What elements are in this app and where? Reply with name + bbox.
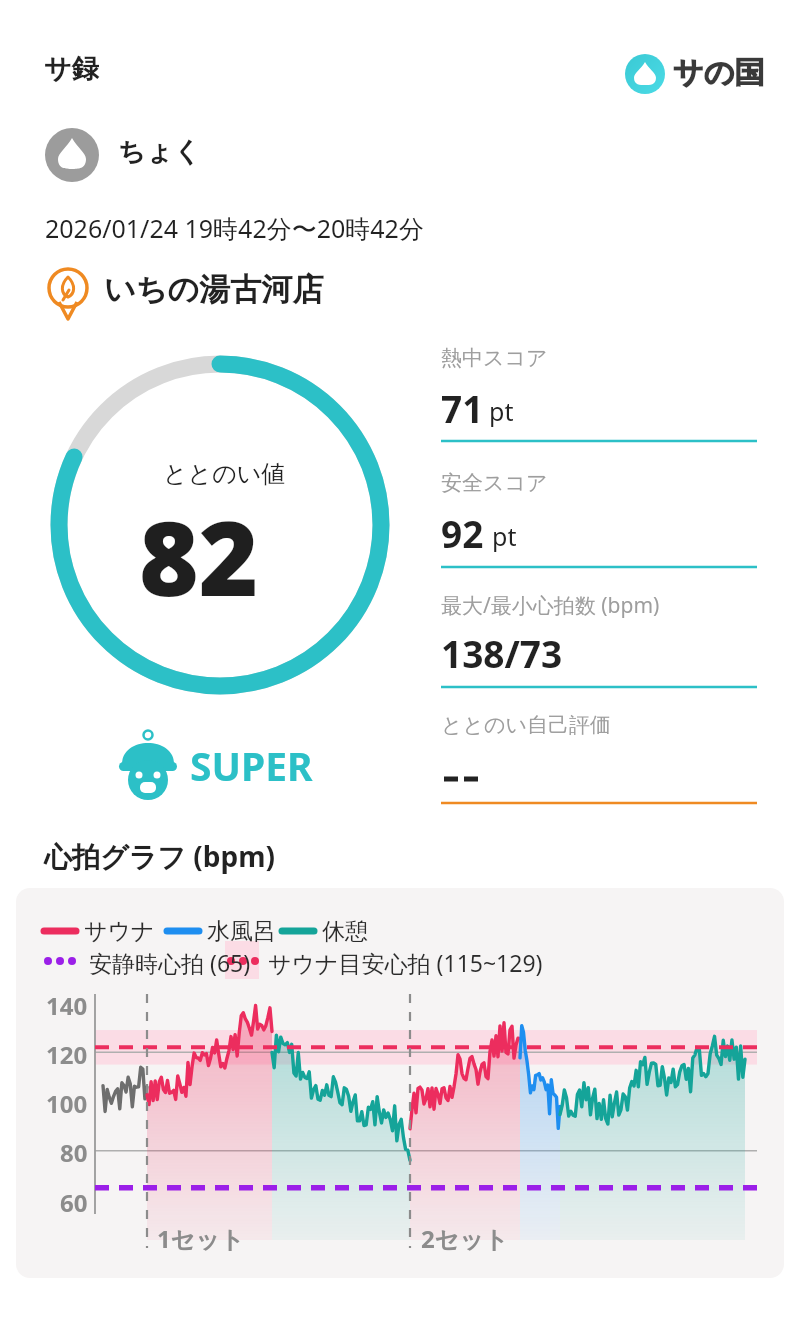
button[interactable]: ととのい値 82 [40,350,402,812]
staticText: サの国 [673,54,765,92]
staticText: サウナ [84,917,155,946]
staticText: 92 [441,508,484,558]
button[interactable] [436,583,762,695]
staticText: ととのい値 [163,459,286,489]
staticText: サウナ目安心拍 (115~129) [268,947,543,978]
staticText: 82 [139,487,259,626]
staticText: 100 [46,1087,88,1120]
staticText: 2026/01/24 19時42分〜20時42分 [45,211,424,245]
staticText: ととのい自己評価 [441,712,611,738]
button[interactable]: サの国 ロゴ [620,48,782,98]
staticText: 120 [46,1038,88,1071]
staticText: 1セット [157,1222,245,1255]
staticText: 60 [60,1186,88,1219]
button[interactable] [40,122,310,188]
staticText: サ録 [44,52,99,86]
button[interactable]: 心拍グラフ [16,888,784,1278]
button[interactable] [436,463,762,575]
staticText: 心拍グラフ (bpm) [44,837,275,875]
staticText: 140 [46,989,88,1022]
staticText: 水風呂 [207,917,276,946]
staticText: 80 [60,1136,88,1169]
staticText: 最大/最小心拍数 (bpm) [441,591,660,620]
staticText: 休憩 [322,917,368,946]
button[interactable] [40,260,380,320]
staticText: 138/73 [441,628,563,678]
staticText: ちょく [118,135,201,169]
staticText: 熱中スコア [441,345,548,371]
staticText: pt [489,394,514,428]
staticText: pt [492,519,517,553]
button[interactable] [436,703,762,811]
staticText: 71 [441,383,484,433]
staticText: 安全スコア [441,470,548,496]
staticText: 安静時心拍 (65) [89,947,251,978]
staticText: 2セット [421,1222,509,1255]
button[interactable] [436,338,762,450]
staticText: SUPER [190,739,313,792]
staticText: いちの湯古河店 [104,270,324,309]
